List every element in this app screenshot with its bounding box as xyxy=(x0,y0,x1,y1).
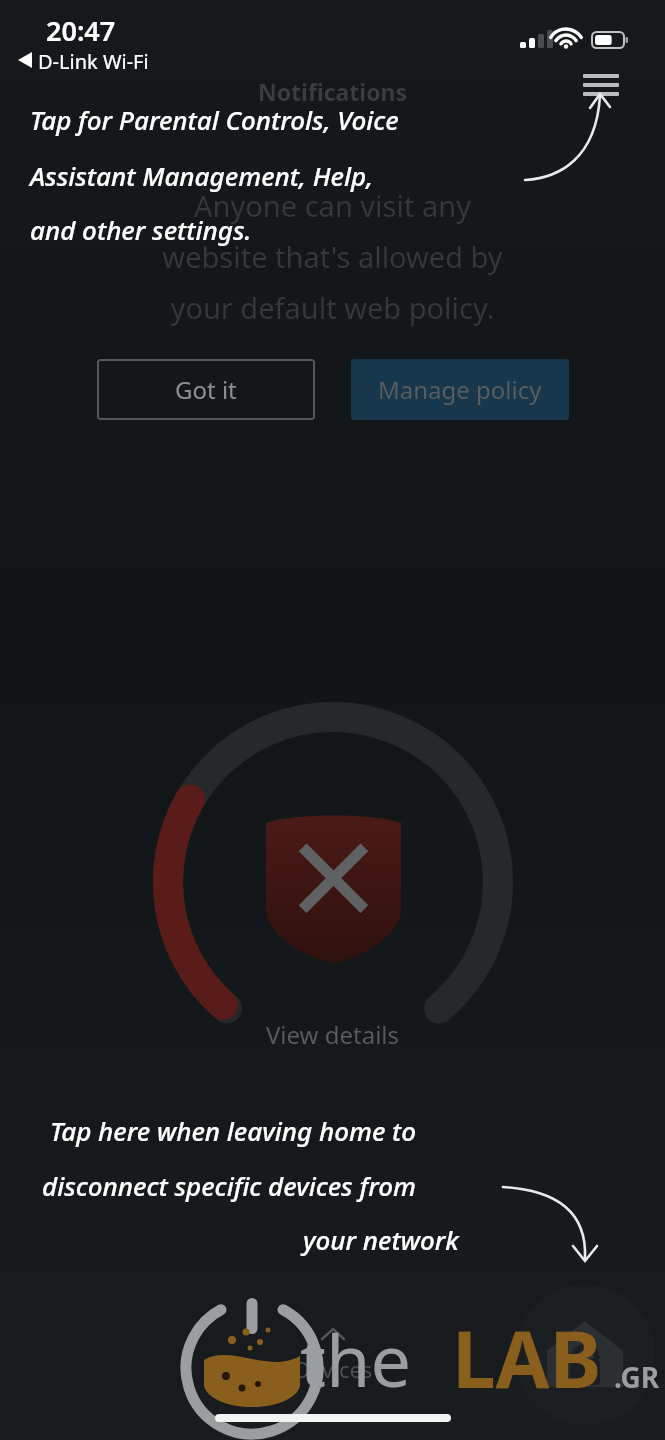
staticText: and other settings. xyxy=(30,212,252,247)
staticText: LAB xyxy=(452,1305,602,1411)
staticText: Tap here when leaving home to xyxy=(50,1113,417,1148)
staticText: Assistant Management, Help, xyxy=(30,158,374,193)
staticText: the xyxy=(300,1310,412,1408)
button[interactable]: Got it xyxy=(97,359,315,420)
button[interactable]: Devices xyxy=(263,1318,403,1398)
staticText: .GR xyxy=(614,1358,660,1396)
staticText: Anyone can visit any website that's allo… xyxy=(60,186,605,336)
staticText: your network xyxy=(303,1222,459,1257)
staticText: Got it xyxy=(175,373,237,406)
staticText: Manage policy xyxy=(378,373,542,406)
button[interactable]: Menu xyxy=(572,62,630,114)
staticText: disconnect specific devices from xyxy=(42,1168,416,1203)
staticText: Notifications xyxy=(0,76,665,108)
button[interactable] xyxy=(138,700,528,1060)
staticText: D-Link Wi-Fi xyxy=(38,48,149,75)
staticText: Tap for Parental Controls, Voice xyxy=(30,102,399,137)
staticText: View details xyxy=(0,1018,665,1052)
staticText: Devices xyxy=(294,1354,373,1384)
staticText: 20:47 xyxy=(46,12,116,49)
button[interactable]: Home security xyxy=(515,1285,655,1425)
button[interactable]: Manage policy xyxy=(351,359,569,420)
